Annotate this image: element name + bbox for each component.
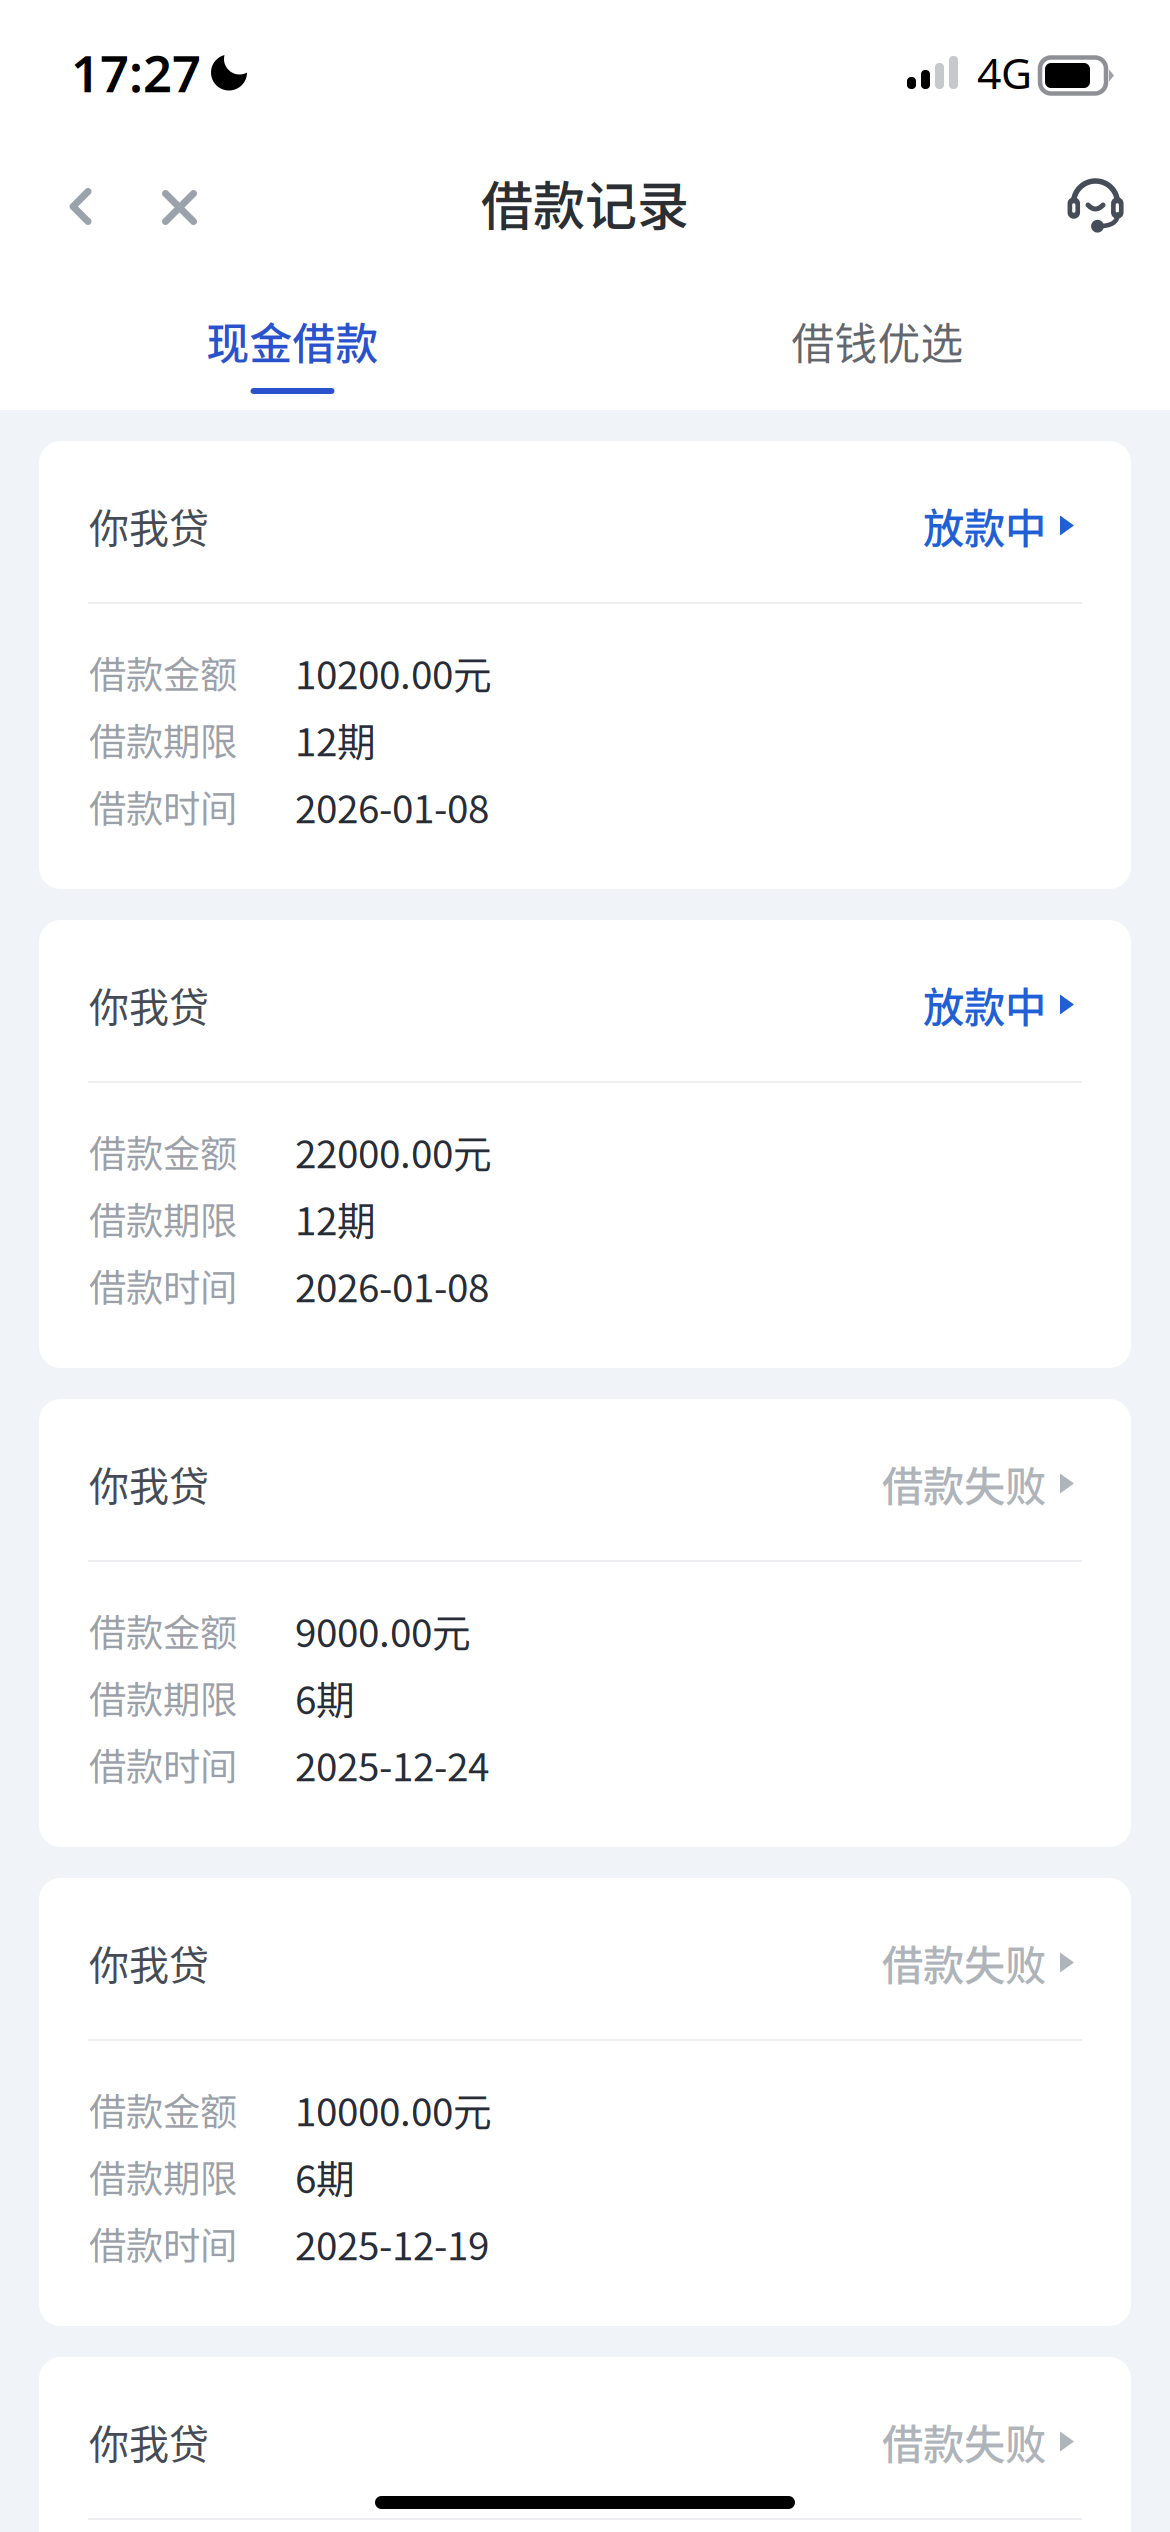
staticText: 17:27: [71, 39, 201, 106]
button[interactable]: 你我贷: [39, 1878, 1131, 2326]
staticText: 借款金额: [89, 2082, 237, 2137]
staticText: 借款时间: [89, 2216, 237, 2271]
button[interactable]: Customer service: [1046, 152, 1146, 252]
staticText: 12期: [295, 711, 376, 767]
button[interactable]: 你我贷: [39, 920, 1131, 1368]
staticText: 借款金额: [89, 645, 237, 700]
staticText: 借款记录: [481, 165, 689, 240]
staticText: 借款失败: [882, 2412, 1046, 2471]
staticText: 借款金额: [89, 1124, 237, 1179]
staticText: 10000.00元: [295, 2081, 492, 2137]
staticText: 借款期限: [89, 2149, 237, 2204]
button[interactable]: Back: [40, 152, 121, 252]
button[interactable]: Close: [121, 152, 226, 252]
staticText: 6期: [295, 1669, 355, 1725]
button[interactable]: 现金借款: [0, 265, 585, 410]
staticText: 22000.00元: [295, 1123, 492, 1179]
staticText: 借款期限: [89, 712, 237, 767]
staticText: 你我贷: [89, 1454, 209, 1512]
button[interactable]: 你我贷: [39, 1399, 1131, 1847]
staticText: 10200.00元: [295, 644, 492, 700]
staticText: 你我贷: [89, 975, 209, 1033]
staticText: 现金借款: [206, 310, 378, 372]
staticText: 放款中: [923, 975, 1046, 1034]
staticText: 你我贷: [89, 1933, 209, 1991]
button[interactable]: 你我贷: [39, 441, 1131, 889]
staticText: 借款失败: [882, 1454, 1046, 1513]
staticText: 4G: [977, 44, 1032, 101]
staticText: 6期: [295, 2148, 355, 2204]
staticText: 借款期限: [89, 1670, 237, 1725]
staticText: 9000.00元: [295, 1602, 471, 1658]
staticText: 借款期限: [89, 1191, 237, 1246]
button[interactable]: 借钱优选: [585, 265, 1170, 410]
staticText: 2026-01-08: [295, 1257, 489, 1313]
staticText: 借款时间: [89, 1737, 237, 1792]
staticText: 借钱优选: [791, 310, 963, 372]
staticText: 12期: [295, 1190, 376, 1246]
staticText: 放款中: [923, 496, 1046, 555]
staticText: 借款时间: [89, 1258, 237, 1313]
staticText: 2026-01-08: [295, 778, 489, 834]
staticText: 你我贷: [89, 2412, 209, 2470]
staticText: 你我贷: [89, 496, 209, 554]
button[interactable]: 你我贷: [39, 2357, 1131, 2532]
staticText: 2025-12-24: [295, 1736, 489, 1792]
staticText: 借款失败: [882, 1933, 1046, 1992]
staticText: 借款时间: [89, 779, 237, 834]
staticText: 借款金额: [89, 1603, 237, 1658]
staticText: 2025-12-19: [295, 2215, 489, 2271]
